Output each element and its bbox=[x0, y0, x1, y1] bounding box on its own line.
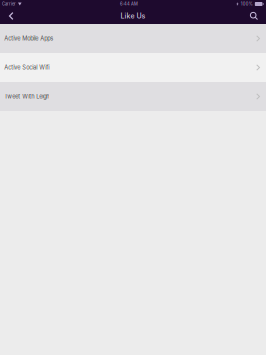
button[interactable]: Tweet With Leigh bbox=[0, 82, 266, 111]
staticText: Active Social Wifi bbox=[4, 64, 49, 71]
staticText: Tweet With Leigh bbox=[4, 93, 49, 100]
staticText: Carrier bbox=[2, 1, 16, 6]
staticText: Like Us bbox=[120, 12, 145, 20]
button[interactable]: Back bbox=[1, 8, 22, 24]
button[interactable]: Active Mobile Apps bbox=[0, 24, 266, 53]
button[interactable]: Search bbox=[244, 8, 264, 24]
button[interactable]: Active Social Wifi bbox=[0, 53, 266, 82]
staticText: Active Mobile Apps bbox=[4, 35, 53, 42]
staticText: 100% bbox=[241, 1, 253, 6]
staticText: 6:44 AM bbox=[120, 1, 138, 6]
